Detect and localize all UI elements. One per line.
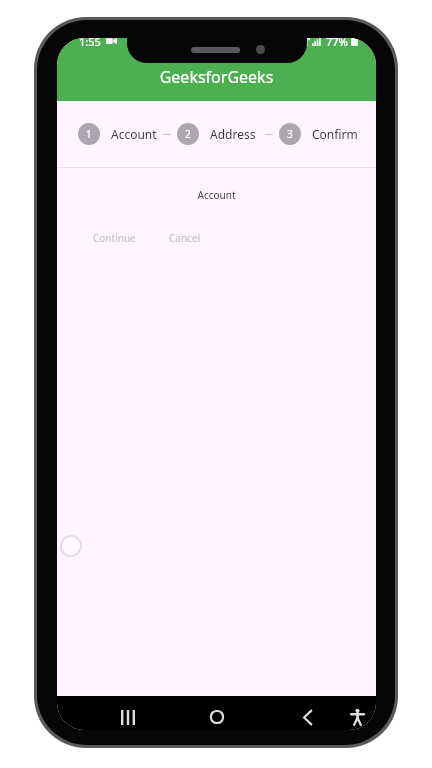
staticText: Account — [111, 126, 157, 142]
staticText: Account — [57, 188, 376, 202]
staticText: 1 — [86, 127, 92, 141]
staticText: Continue — [93, 231, 136, 245]
button[interactable]: Home — [203, 703, 231, 730]
button[interactable]: Cancel — [161, 226, 209, 250]
button[interactable]: Add — [60, 535, 82, 557]
button[interactable]: 3 — [279, 123, 358, 145]
staticText: Cancel — [169, 231, 201, 245]
staticText: 77% — [326, 38, 348, 48]
staticText: 3 — [287, 127, 293, 141]
staticText: Address — [210, 126, 256, 142]
staticText: Confirm — [312, 126, 358, 142]
button[interactable]: Back — [293, 703, 321, 730]
button[interactable]: 1 — [78, 123, 157, 145]
button[interactable]: Continue — [85, 226, 144, 250]
button[interactable]: 2 — [177, 123, 256, 145]
staticText: GeeksforGeeks — [57, 66, 376, 88]
staticText: 1:55 — [79, 38, 101, 48]
button[interactable]: Accessibility — [343, 703, 371, 730]
staticText: 2 — [185, 127, 191, 141]
button[interactable]: Recents — [114, 703, 142, 730]
